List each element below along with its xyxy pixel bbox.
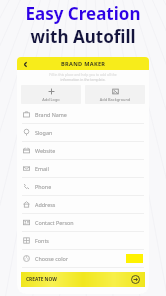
staticText: Choose color xyxy=(35,255,69,262)
staticText: Fonts xyxy=(35,237,49,244)
button[interactable]: Contact Person xyxy=(17,214,149,231)
staticText: with Autofill xyxy=(30,25,136,48)
staticText: Email xyxy=(35,165,49,172)
staticText: Slogan xyxy=(35,129,53,136)
button[interactable]: Add Logo xyxy=(21,85,81,104)
button[interactable]: Fonts xyxy=(17,232,149,249)
button[interactable]: Add Background xyxy=(85,85,145,104)
staticText: information in the template. xyxy=(24,77,142,82)
staticText: Fill in this place and help you to add a… xyxy=(24,72,142,77)
other: Go xyxy=(131,275,140,284)
staticText: CREATE NOW xyxy=(26,276,57,283)
staticText: Contact Person xyxy=(35,219,74,226)
staticText: Add Logo xyxy=(21,97,81,102)
button[interactable]: Email xyxy=(17,160,149,177)
button[interactable]: Slogan xyxy=(17,124,149,141)
button[interactable]: Address xyxy=(17,196,149,213)
button[interactable]: Back xyxy=(20,59,30,69)
button[interactable]: CREATE NOW xyxy=(21,272,145,287)
button[interactable]: Phone xyxy=(17,178,149,195)
staticText: Brand Name xyxy=(35,111,67,118)
staticText: Website xyxy=(35,147,56,154)
staticText: Address xyxy=(35,201,56,208)
button[interactable]: Brand Name xyxy=(17,106,149,123)
staticText: Easy Creation xyxy=(25,2,141,25)
staticText: BRAND MAKER xyxy=(61,60,106,68)
staticText: Phone xyxy=(35,183,52,190)
button[interactable]: Website xyxy=(17,142,149,159)
button[interactable]: Choose color xyxy=(17,250,149,267)
staticText: Add Background xyxy=(85,97,145,102)
